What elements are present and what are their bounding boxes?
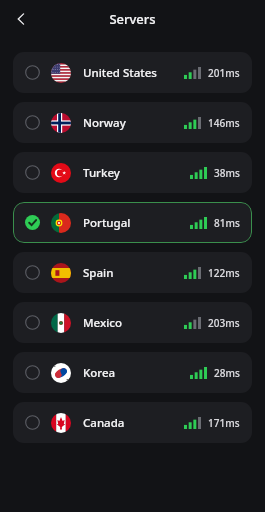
staticText: 81ms	[214, 216, 240, 230]
staticText: 171ms	[208, 416, 240, 430]
button[interactable]: United States	[13, 52, 252, 93]
staticText: Norway	[83, 115, 184, 131]
staticText: Servers	[109, 10, 156, 28]
button[interactable]: Turkey	[13, 152, 252, 193]
staticText: 201ms	[208, 66, 240, 80]
button[interactable]: Back	[6, 4, 36, 34]
button[interactable]: Canada	[13, 402, 252, 443]
staticText: Canada	[83, 415, 184, 431]
staticText: Spain	[83, 265, 184, 281]
staticText: United States	[83, 65, 184, 81]
staticText: 122ms	[208, 266, 240, 280]
button[interactable]: Norway	[13, 102, 252, 143]
staticText: 28ms	[214, 366, 240, 380]
staticText: Turkey	[83, 165, 190, 181]
button[interactable]: Portugal	[13, 202, 252, 243]
staticText: 203ms	[208, 316, 240, 330]
button[interactable]: Spain	[13, 252, 252, 293]
staticText: Mexico	[83, 315, 184, 331]
button[interactable]: Mexico	[13, 302, 252, 343]
button[interactable]: Korea	[13, 352, 252, 393]
staticText: 38ms	[214, 166, 240, 180]
staticText: Portugal	[83, 215, 190, 231]
staticText: 146ms	[208, 116, 240, 130]
staticText: Korea	[83, 365, 190, 381]
